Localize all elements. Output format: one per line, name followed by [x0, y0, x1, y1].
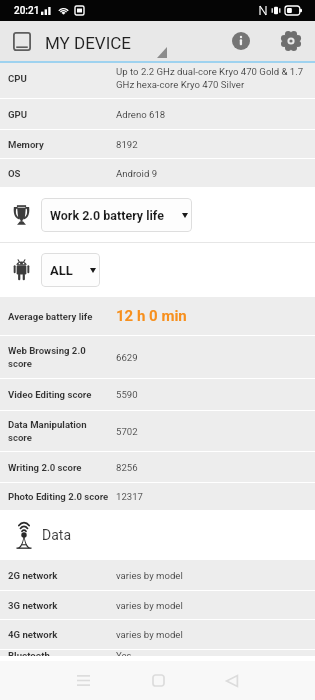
- button[interactable]: Photo Editing 2.0 score: [0, 483, 315, 510]
- button[interactable]: 3G network: [0, 591, 315, 619]
- button[interactable]: OS: [0, 159, 315, 187]
- staticText: Video Editing score: [8, 389, 116, 400]
- staticText: Web Browsing 2.0 score: [8, 345, 116, 369]
- staticText: Average battery life: [8, 311, 116, 322]
- staticText: 20:21: [14, 5, 40, 17]
- button[interactable]: CPU: [0, 63, 315, 98]
- button[interactable]: Memory: [0, 130, 315, 158]
- staticText: 2G network: [8, 570, 116, 581]
- staticText: ALL: [50, 263, 73, 278]
- button[interactable]: Bluetooth: [0, 650, 315, 656]
- staticText: Work 2.0 battery life: [50, 208, 164, 223]
- button[interactable]: Data Manipulation score: [0, 411, 315, 451]
- staticText: CPU: [8, 73, 116, 84]
- button[interactable]: Web Browsing 2.0 score: [0, 336, 315, 378]
- staticText: Data: [42, 527, 71, 543]
- staticText: Yes: [116, 650, 132, 656]
- staticText: Photo Editing 2.0 score: [8, 491, 116, 502]
- button[interactable]: ALL: [41, 253, 100, 287]
- staticText: OS: [8, 168, 116, 179]
- staticText: Up to 2.2 GHz dual-core Kryo 470 Gold & …: [116, 66, 304, 90]
- button[interactable]: GPU: [0, 99, 315, 129]
- staticText: 5590: [116, 389, 138, 400]
- staticText: Writing 2.0 score: [8, 462, 116, 473]
- staticText: 6629: [116, 352, 138, 363]
- button[interactable]: Settings: [275, 25, 307, 57]
- staticText: 5702: [116, 426, 138, 437]
- staticText: 12317: [116, 491, 143, 502]
- button[interactable]: Video Editing score: [0, 379, 315, 410]
- button[interactable]: Writing 2.0 score: [0, 452, 315, 482]
- staticText: Bluetooth: [8, 650, 116, 656]
- button[interactable]: Home: [137, 661, 179, 700]
- staticText: MY DEVICE: [45, 33, 132, 53]
- button[interactable]: Data: [0, 510, 315, 560]
- button[interactable]: Info: [225, 25, 257, 57]
- staticText: Android 9: [116, 168, 158, 179]
- button[interactable]: 4G network: [0, 620, 315, 649]
- button[interactable]: 2G network: [0, 560, 315, 590]
- staticText: varies by model: [116, 600, 183, 611]
- staticText: Data Manipulation score: [8, 419, 116, 443]
- button[interactable]: Work 2.0 battery life: [41, 198, 192, 232]
- staticText: varies by model: [116, 629, 183, 640]
- staticText: 3G network: [8, 600, 116, 611]
- staticText: Adreno 618: [116, 109, 166, 120]
- button[interactable]: Average battery life: [0, 297, 315, 335]
- staticText: varies by model: [116, 570, 183, 581]
- staticText: Memory: [8, 139, 116, 150]
- button[interactable]: Back: [211, 661, 253, 700]
- staticText: 4G network: [8, 629, 116, 640]
- button[interactable]: Device: [12, 32, 31, 51]
- staticText: 8256: [116, 462, 138, 473]
- staticText: 12 h 0 min: [116, 307, 187, 325]
- button[interactable]: Recent apps: [62, 661, 104, 700]
- staticText: 8192: [116, 139, 138, 150]
- staticText: GPU: [8, 109, 116, 120]
